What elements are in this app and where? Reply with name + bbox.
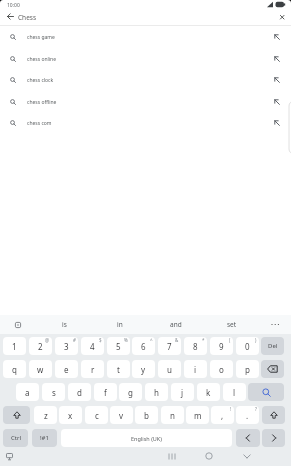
staticText: ! — [230, 406, 232, 412]
staticText: r — [91, 364, 95, 375]
button[interactable]: and — [153, 315, 199, 334]
staticText: chess game — [27, 34, 55, 41]
button[interactable] — [248, 383, 284, 401]
button[interactable]: 6 — [132, 337, 155, 355]
button[interactable]: a — [16, 383, 39, 401]
staticText: w — [37, 364, 44, 375]
staticText: Chess — [18, 13, 37, 22]
button[interactable] — [15, 322, 21, 328]
button[interactable]: l — [223, 383, 246, 401]
staticText: x — [68, 410, 73, 421]
staticText: h — [154, 387, 159, 398]
staticText: set — [227, 320, 237, 329]
button[interactable]: 0 — [236, 337, 259, 355]
button[interactable]: q — [3, 360, 26, 378]
button[interactable]: v — [110, 406, 133, 424]
button[interactable]: b — [135, 406, 158, 424]
button[interactable] — [205, 452, 213, 460]
button[interactable] — [274, 77, 280, 83]
staticText: 2 — [38, 341, 43, 352]
button[interactable]: chess game — [0, 26, 291, 48]
button[interactable]: e — [55, 360, 78, 378]
button[interactable] — [280, 15, 284, 19]
button[interactable]: x — [59, 406, 82, 424]
button[interactable] — [274, 34, 280, 40]
staticText: 3 — [64, 341, 69, 352]
button[interactable]: t — [107, 360, 130, 378]
button[interactable]: chess clock — [0, 69, 291, 91]
staticText: n — [170, 410, 175, 421]
staticText: ) — [255, 337, 257, 343]
staticText: 9 — [219, 341, 224, 352]
button[interactable]: chess online — [0, 48, 291, 70]
staticText: # — [73, 337, 76, 343]
staticText: * — [202, 337, 205, 343]
staticText: Ctrl — [11, 434, 21, 442]
button[interactable]: i — [184, 360, 207, 378]
button[interactable]: 1 — [3, 337, 26, 355]
button[interactable]: u — [158, 360, 181, 378]
button[interactable] — [6, 453, 13, 461]
button[interactable]: d — [68, 383, 91, 401]
button[interactable]: Del — [261, 337, 284, 355]
button[interactable]: chess com — [0, 112, 291, 134]
button[interactable]: h — [145, 383, 168, 401]
button[interactable]: 3 — [55, 337, 78, 355]
button[interactable]: r — [81, 360, 104, 378]
staticText: 7 — [167, 341, 172, 352]
button[interactable]: c — [85, 406, 108, 424]
button[interactable] — [274, 120, 280, 126]
staticText: e — [64, 364, 69, 375]
button[interactable]: p — [236, 360, 259, 378]
button[interactable]: 2 — [29, 337, 52, 355]
button[interactable]: is — [41, 315, 87, 334]
staticText: c — [95, 410, 99, 421]
staticText: . — [246, 410, 249, 421]
button[interactable]: f — [94, 383, 117, 401]
button[interactable]: , — [211, 406, 234, 424]
staticText: q — [12, 364, 17, 375]
button[interactable]: j — [171, 383, 194, 401]
staticText: ^ — [150, 337, 153, 343]
button[interactable] — [243, 454, 251, 459]
button[interactable]: set — [209, 315, 255, 334]
button[interactable]: 9 — [210, 337, 233, 355]
button[interactable]: chess offline — [0, 91, 291, 113]
button[interactable]: z — [34, 406, 57, 424]
button[interactable] — [167, 453, 177, 460]
staticText: b — [144, 410, 149, 421]
button[interactable]: w — [29, 360, 52, 378]
button[interactable]: 5 — [107, 337, 130, 355]
staticText: @ — [45, 337, 50, 343]
button[interactable]: English (UK) — [61, 429, 232, 447]
button[interactable] — [274, 99, 280, 105]
staticText: l — [233, 387, 236, 398]
button[interactable]: 7 — [158, 337, 181, 355]
button[interactable]: Ctrl — [3, 429, 28, 447]
button[interactable]: s — [42, 383, 65, 401]
button[interactable]: 8 — [184, 337, 207, 355]
button[interactable]: m — [186, 406, 209, 424]
button[interactable]: 4 — [81, 337, 104, 355]
button[interactable]: o — [210, 360, 233, 378]
staticText: j — [181, 387, 184, 398]
button[interactable] — [7, 13, 14, 20]
button[interactable]: in — [97, 315, 143, 334]
button[interactable]: g — [119, 383, 142, 401]
button[interactable]: !#1 — [32, 429, 57, 447]
button[interactable] — [3, 406, 30, 424]
staticText: i — [194, 364, 197, 375]
button[interactable]: k — [197, 383, 220, 401]
button[interactable]: n — [161, 406, 184, 424]
button[interactable] — [236, 429, 260, 447]
button[interactable] — [274, 56, 280, 62]
button[interactable] — [262, 406, 285, 424]
button[interactable] — [261, 360, 284, 378]
button[interactable] — [270, 321, 281, 328]
button[interactable]: y — [132, 360, 155, 378]
staticText: z — [44, 410, 48, 421]
staticText: 5 — [116, 341, 121, 352]
button[interactable]: . — [236, 406, 259, 424]
button[interactable] — [262, 429, 285, 447]
staticText: chess com — [27, 120, 52, 127]
